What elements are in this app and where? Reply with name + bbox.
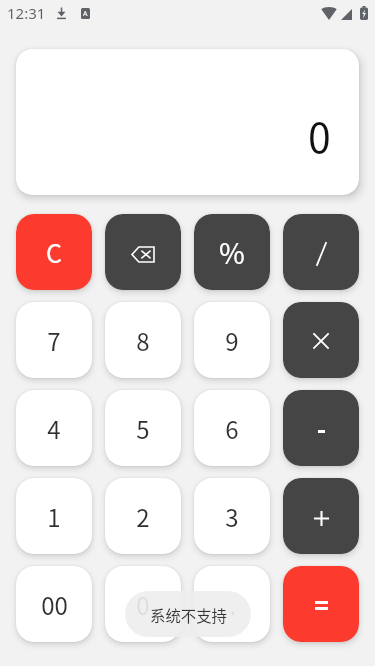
staticText: 4 <box>47 411 61 446</box>
staticText: 系统不支持 <box>150 604 227 626</box>
staticText: 8 <box>136 323 150 358</box>
button[interactable]: Backspace <box>105 214 181 290</box>
button[interactable]: 8 <box>105 302 181 378</box>
button[interactable]: 3 <box>194 478 270 554</box>
button[interactable]: 0 <box>105 566 181 642</box>
button[interactable]: C <box>16 214 92 290</box>
button[interactable]: Plus <box>283 478 359 554</box>
button[interactable]: Equals <box>283 566 359 642</box>
staticText: % <box>219 232 245 273</box>
staticText: 7 <box>47 323 61 358</box>
button[interactable]: 00 <box>16 566 92 642</box>
staticText: 12:31 <box>7 3 46 23</box>
button[interactable]: Minus <box>283 390 359 466</box>
button[interactable]: 1 <box>16 478 92 554</box>
staticText: 6 <box>225 411 239 446</box>
staticText: 1 <box>47 499 61 534</box>
button[interactable]: Divide <box>283 214 359 290</box>
staticText: 0 <box>308 105 331 164</box>
staticText: 2 <box>136 499 150 534</box>
staticText: A <box>83 9 88 19</box>
staticText: 00 <box>41 587 68 622</box>
button[interactable]: % <box>194 214 270 290</box>
button[interactable]: 2 <box>105 478 181 554</box>
button[interactable]: 4 <box>16 390 92 466</box>
button[interactable]: 5 <box>105 390 181 466</box>
staticText: 3 <box>225 499 239 534</box>
button[interactable]: Multiply <box>283 302 359 378</box>
button[interactable]: 9 <box>194 302 270 378</box>
staticText: . <box>229 587 236 622</box>
staticText: C <box>46 234 62 270</box>
button[interactable]: . <box>194 566 270 642</box>
staticText: 5 <box>136 411 150 446</box>
button[interactable]: 7 <box>16 302 92 378</box>
staticText: 0 <box>136 587 150 622</box>
staticText: 9 <box>225 323 239 358</box>
button[interactable]: 6 <box>194 390 270 466</box>
